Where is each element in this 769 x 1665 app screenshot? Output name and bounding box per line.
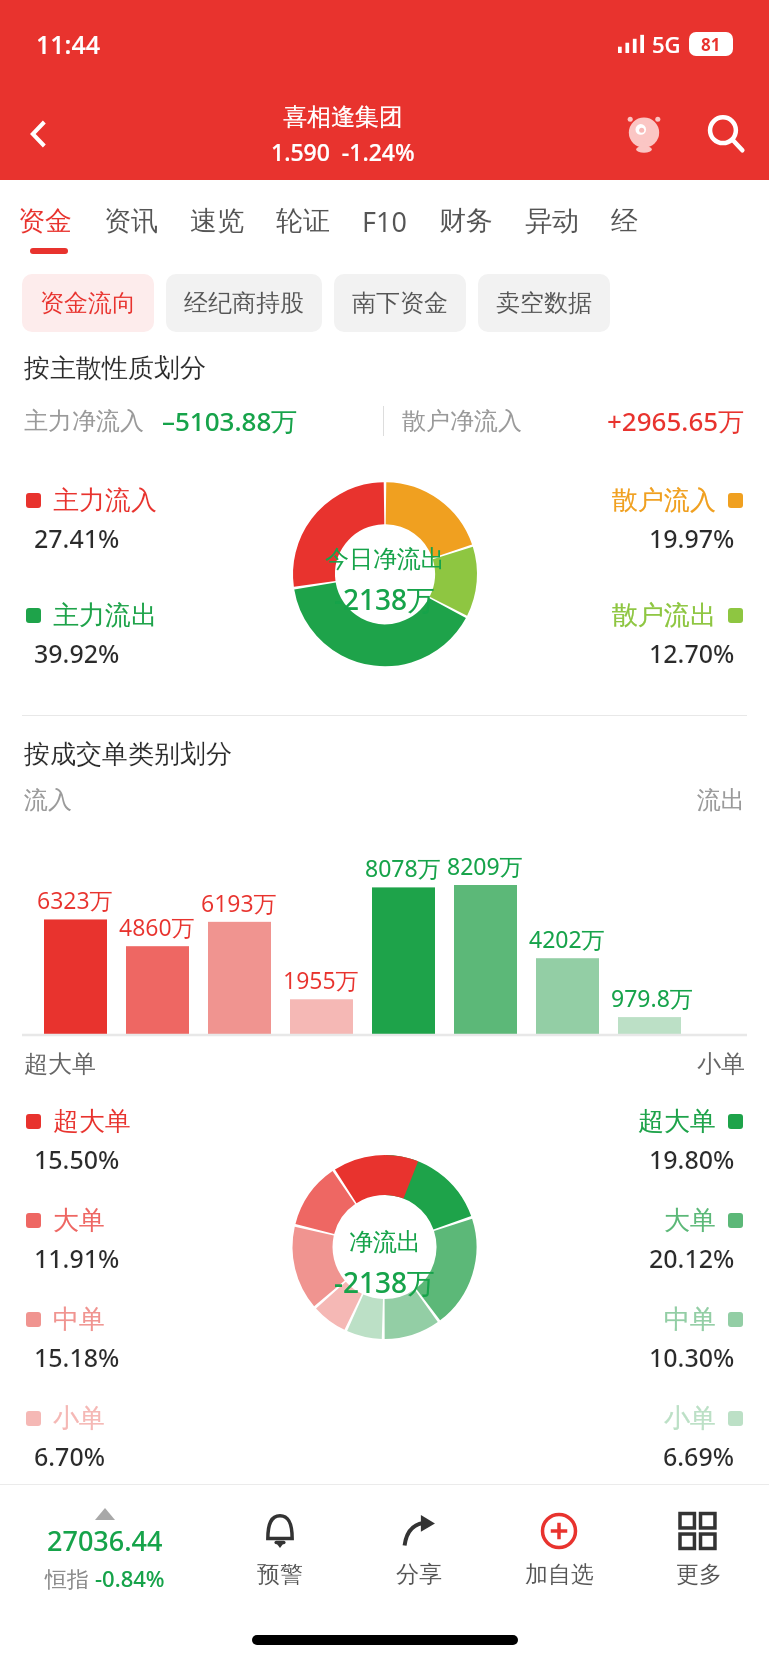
staticText: 20.12%	[649, 1241, 735, 1275]
staticText: 南下资金	[352, 288, 448, 318]
staticText: 资金流向	[40, 288, 136, 318]
staticText: 散户流出	[612, 599, 716, 632]
staticText: 小单	[697, 1049, 745, 1079]
staticText: 6323万	[37, 884, 113, 915]
button[interactable]: 速览	[190, 180, 244, 262]
staticText: 15.50%	[34, 1142, 120, 1176]
staticText: 5G	[652, 29, 681, 59]
staticText: 散户净流入	[402, 406, 522, 436]
staticText: 资金	[18, 204, 72, 238]
staticText: 恒指	[45, 1563, 95, 1593]
staticText: –5103.88万	[162, 403, 298, 439]
staticText: 1955万	[283, 964, 359, 995]
staticText: 加自选	[525, 1560, 594, 1589]
staticText: 27.41%	[34, 521, 120, 555]
staticText: 分享	[396, 1560, 442, 1589]
staticText: 速览	[190, 204, 244, 238]
staticText: 资讯	[104, 204, 158, 238]
button[interactable]: 预警	[210, 1485, 349, 1615]
staticText: 11:44	[36, 27, 101, 61]
staticText: 轮证	[276, 204, 330, 238]
staticText: 4860万	[119, 911, 195, 942]
staticText: 超大单	[638, 1105, 716, 1138]
staticText: 流入	[24, 785, 72, 815]
staticText: 小单	[664, 1402, 716, 1435]
staticText: +2965.65万	[607, 403, 745, 439]
button[interactable]: 经纪商持股	[166, 274, 322, 332]
staticText: 异动	[525, 204, 579, 238]
button[interactable]: 分享	[349, 1485, 489, 1615]
staticText: 中单	[53, 1303, 105, 1336]
button[interactable]: Assistant	[605, 88, 683, 180]
staticText: 主力流入	[53, 484, 157, 517]
staticText: 19.80%	[649, 1142, 735, 1176]
staticText: -2138万	[334, 580, 436, 618]
staticText: 10.30%	[649, 1340, 735, 1374]
button[interactable]: 资金流向	[22, 274, 154, 332]
staticText: 12.70%	[649, 636, 735, 670]
staticText: -0.84%	[95, 1563, 165, 1593]
staticText: 8078万	[365, 852, 441, 883]
button[interactable]: 27036.44	[0, 1485, 210, 1615]
staticText: 超大单	[53, 1105, 131, 1138]
staticText: 卖空数据	[496, 288, 592, 318]
staticText: 预警	[257, 1560, 303, 1589]
staticText: 4202万	[529, 923, 605, 954]
button[interactable]: 经	[611, 180, 638, 262]
button[interactable]: Search	[683, 88, 769, 180]
button[interactable]: 轮证	[276, 180, 330, 262]
staticText: 6.70%	[34, 1439, 106, 1473]
staticText: 大单	[53, 1204, 105, 1237]
staticText: 主力净流入	[24, 406, 144, 436]
button[interactable]: 更多	[629, 1485, 769, 1615]
staticText: 81	[701, 33, 721, 56]
staticText: 8209万	[447, 850, 523, 881]
staticText: 6.69%	[663, 1439, 735, 1473]
staticText: 超大单	[24, 1049, 96, 1079]
staticText: 喜相逢集团	[283, 102, 403, 132]
staticText: F10	[362, 203, 407, 240]
button[interactable]: 异动	[525, 180, 579, 262]
staticText: 散户流入	[612, 484, 716, 517]
staticText: 27036.44	[47, 1522, 163, 1559]
staticText: 11.91%	[34, 1241, 120, 1275]
staticText: 中单	[664, 1303, 716, 1336]
staticText: 39.92%	[34, 636, 120, 670]
staticText: 按主散性质划分	[24, 352, 206, 385]
button[interactable]: 财务	[439, 180, 493, 262]
button[interactable]: 南下资金	[334, 274, 466, 332]
staticText: -2138万	[334, 1263, 436, 1301]
staticText: 19.97%	[649, 521, 735, 555]
staticText: 大单	[664, 1204, 716, 1237]
button[interactable]: 加自选	[489, 1485, 629, 1615]
staticText: 6193万	[201, 887, 277, 918]
staticText: 经	[611, 204, 638, 238]
button[interactable]: F10	[362, 180, 407, 262]
button[interactable]: 资金	[18, 180, 72, 262]
staticText: 今日净流出	[325, 544, 445, 574]
staticText: 净流出	[349, 1227, 421, 1257]
staticText: 财务	[439, 204, 493, 238]
button[interactable]: 资讯	[104, 180, 158, 262]
staticText: 1.590 -1.24%	[271, 136, 415, 167]
staticText: 按成交单类别划分	[24, 738, 232, 771]
staticText: 979.8万	[611, 982, 693, 1013]
staticText: 主力流出	[53, 599, 157, 632]
staticText: 更多	[676, 1560, 722, 1589]
staticText: 流出	[697, 785, 745, 815]
staticText: 经纪商持股	[184, 288, 304, 318]
staticText: 15.18%	[34, 1340, 120, 1374]
button[interactable]: Back	[0, 88, 80, 180]
button[interactable]: 卖空数据	[478, 274, 610, 332]
staticText: 小单	[53, 1402, 105, 1435]
